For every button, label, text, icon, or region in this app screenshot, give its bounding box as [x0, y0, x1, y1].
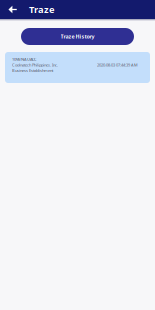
button[interactable]: 10VBNAUACC — [5, 52, 150, 83]
staticText: Traze — [29, 3, 55, 16]
staticText: Business Establishment — [12, 68, 53, 73]
button[interactable]: Traze History — [21, 28, 134, 45]
staticText: Traze History — [60, 33, 94, 40]
staticText: 10VBNAUACC — [12, 57, 37, 62]
staticText: 2020-08-03 07:44:39 AM — [97, 62, 138, 67]
button[interactable]: Back — [4, 0, 21, 19]
staticText: Coolnatech Philippines, Inc. — [12, 62, 58, 67]
